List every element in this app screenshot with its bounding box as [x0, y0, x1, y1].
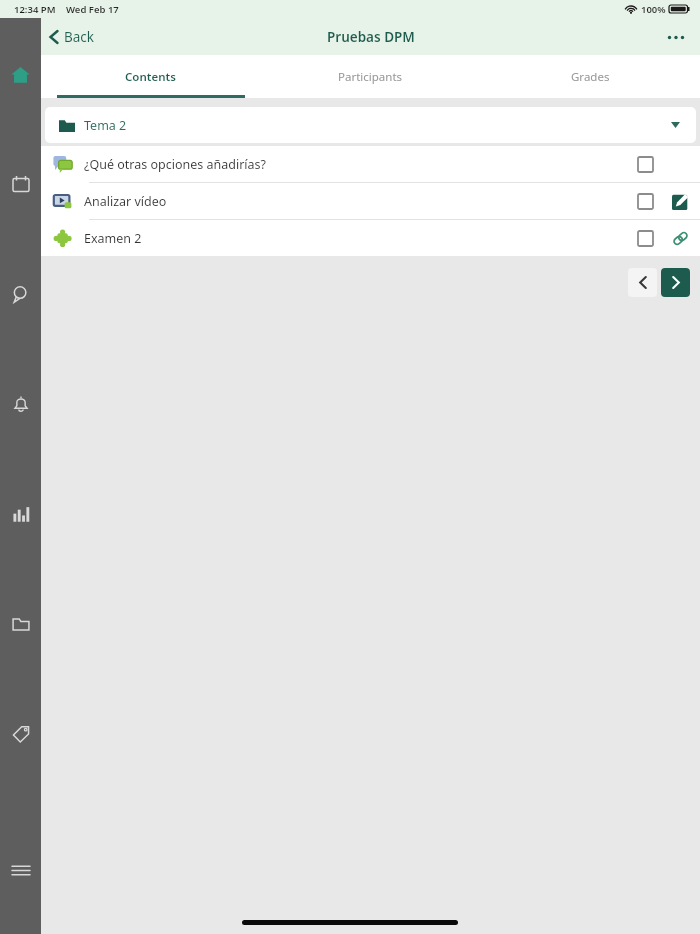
staticText: Analizar vídeo — [84, 193, 167, 210]
button[interactable]: Previous page — [628, 268, 657, 297]
staticText: Wed Feb 17 — [66, 3, 119, 16]
button[interactable]: Tema 2 — [45, 107, 696, 143]
button[interactable]: Examen 2 — [41, 220, 700, 256]
button[interactable]: Analizar vídeo — [41, 183, 700, 219]
button[interactable]: Menu — [0, 856, 41, 884]
button[interactable]: Next page — [661, 268, 690, 297]
staticText: Examen 2 — [84, 230, 142, 247]
button[interactable]: Messages — [0, 280, 41, 308]
staticText: 12:34 PM — [14, 3, 56, 16]
button[interactable]: Calendar — [0, 170, 41, 198]
button[interactable]: Files — [0, 610, 41, 638]
staticText: Back — [64, 28, 95, 46]
button[interactable]: Back — [45, 23, 99, 51]
button[interactable]: ¿Qué otras opciones añadirías? — [41, 146, 700, 182]
button[interactable]: Contents — [41, 55, 260, 98]
button[interactable]: Open link — [668, 226, 692, 250]
button[interactable]: Select Examen 2 — [631, 224, 659, 252]
button[interactable]: Reports — [0, 500, 41, 528]
button[interactable]: Participants — [260, 55, 480, 98]
button[interactable]: Tags — [0, 720, 41, 748]
staticText: Participants — [338, 69, 403, 85]
staticText: Contents — [125, 69, 176, 85]
button[interactable]: Select Analizar vídeo — [631, 187, 659, 215]
button[interactable]: More options — [662, 23, 690, 51]
staticText: ¿Qué otras opciones añadirías? — [84, 156, 266, 173]
button[interactable]: Select ¿Qué otras opciones añadirías? — [631, 150, 659, 178]
staticText: 100% — [641, 3, 666, 16]
button[interactable]: Grades — [480, 55, 700, 98]
button[interactable]: Notifications — [0, 390, 41, 418]
staticText: Tema 2 — [84, 117, 127, 134]
staticText: Grades — [571, 69, 610, 85]
button[interactable]: Home — [0, 60, 41, 88]
staticText: Pruebas DPM — [327, 28, 415, 46]
button[interactable]: Edit — [668, 189, 692, 213]
